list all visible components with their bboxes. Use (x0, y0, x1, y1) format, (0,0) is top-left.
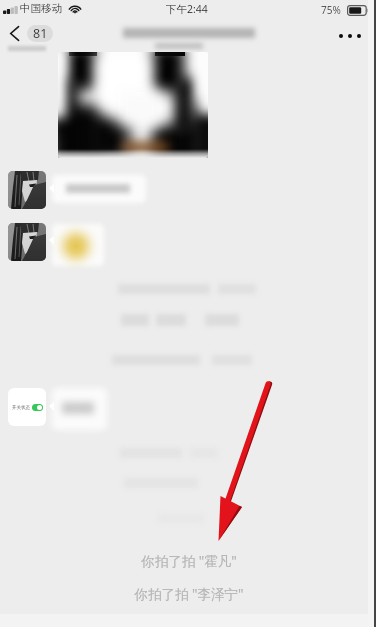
staticText: 81 (33, 25, 48, 42)
staticText: 你拍了拍 "李泽宁" (128, 585, 250, 603)
staticText: 75% (321, 3, 341, 17)
staticText: 开关状态 (12, 405, 30, 411)
staticText: 你拍了拍 "霍凡" (128, 552, 250, 570)
staticText: 下午2:44 (166, 2, 208, 16)
staticText: 中国移动 (20, 2, 62, 15)
button[interactable]: More options (332, 25, 368, 47)
button[interactable]: Back, 81 unread (6, 22, 57, 45)
